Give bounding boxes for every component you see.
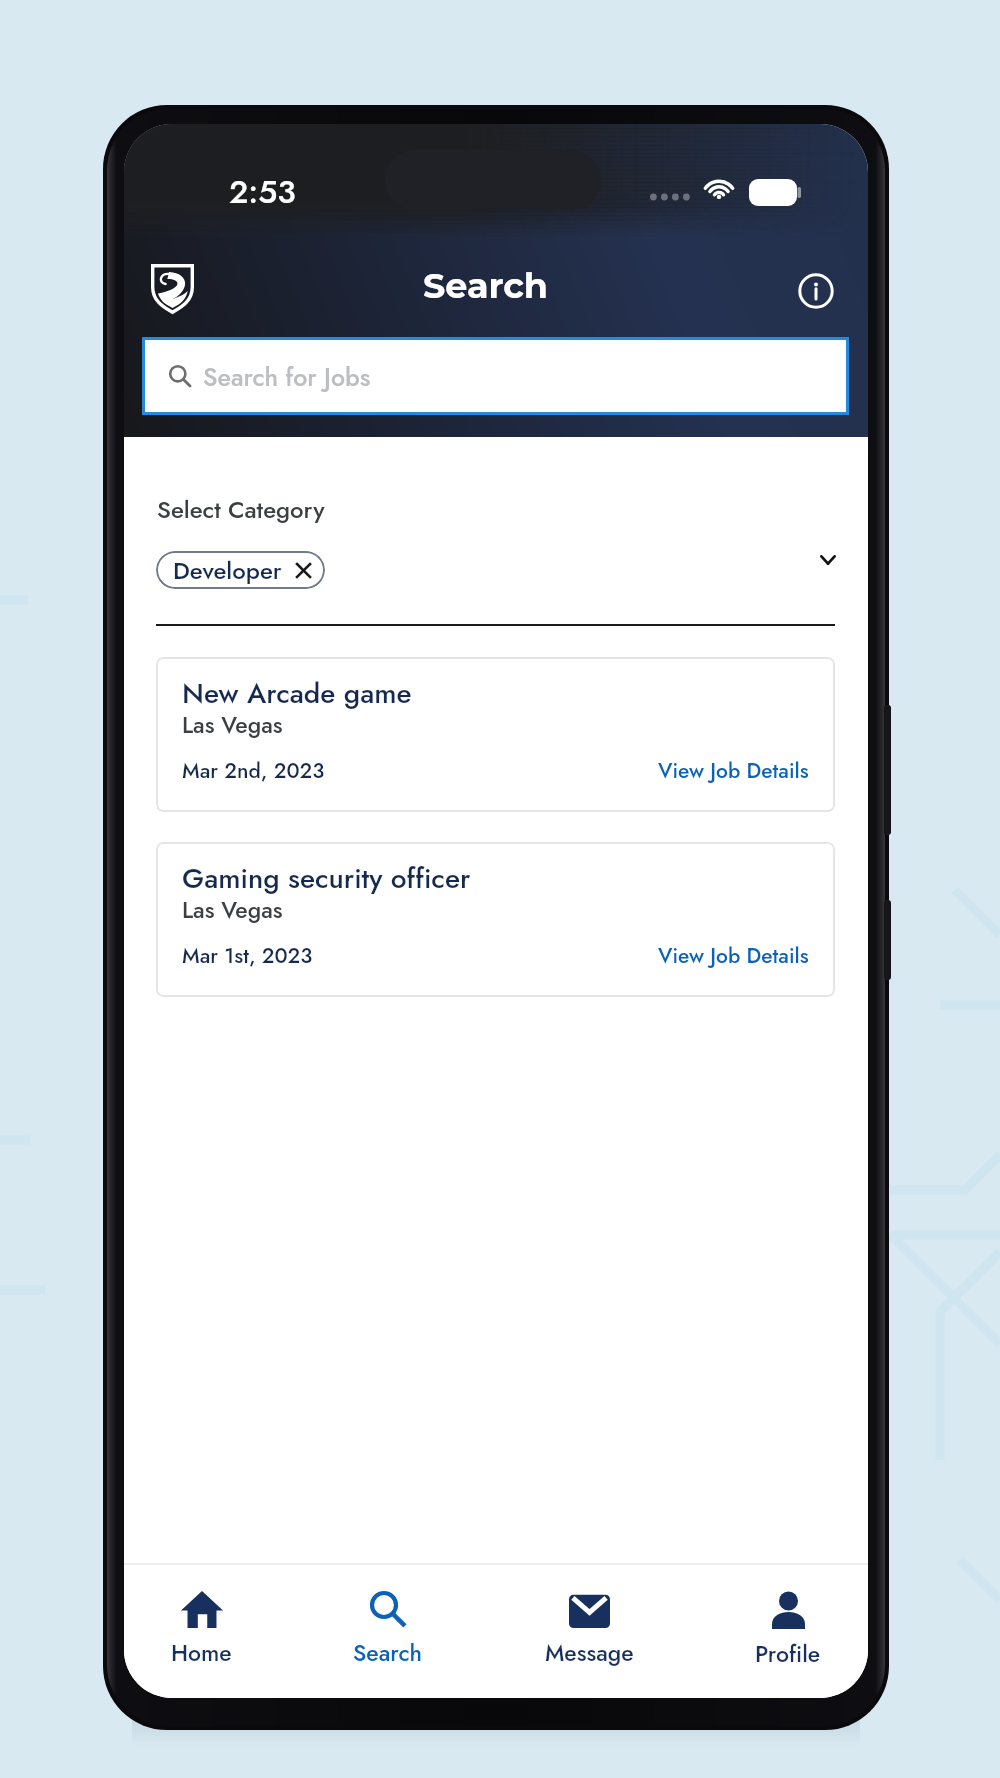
staticText: Gaming security officer [182,858,471,898]
button[interactable]: Message [545,1565,634,1669]
button[interactable]: Profile [755,1565,821,1670]
staticText: Developer [173,553,282,588]
staticText: Home [171,1636,232,1669]
button[interactable]: Information [790,256,842,326]
staticText: Mar 1st, 2023 [182,941,313,971]
staticText: Mar 2nd, 2023 [182,756,325,786]
staticText: View Job Details [658,941,809,971]
button[interactable]: Gaming security officer [156,842,835,997]
button[interactable]: Search [353,1565,423,1669]
button[interactable]: Expand categories [807,539,849,581]
staticText: Message [545,1636,634,1669]
staticText: 2:53 [229,169,296,215]
button[interactable]: New Arcade game [156,657,835,812]
staticText: Search [423,264,549,307]
button[interactable]: Developer [156,551,325,589]
button[interactable]: Home [171,1565,232,1669]
staticText: Search for Jobs [203,359,371,395]
button[interactable]: Search for Jobs [142,337,849,415]
staticText: Profile [755,1637,821,1670]
staticText: Select Category [157,492,325,527]
staticText: View Job Details [658,756,809,786]
staticText: Las Vegas [182,708,283,741]
button[interactable]: View Job Details [658,756,809,786]
staticText: New Arcade game [182,673,412,713]
button[interactable]: App logo [142,256,202,322]
staticText: Las Vegas [182,893,283,926]
staticText: Search [353,1636,423,1669]
button[interactable]: View Job Details [658,941,809,971]
